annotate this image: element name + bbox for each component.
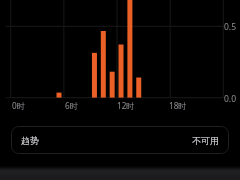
staticText: 0.5 <box>224 21 237 33</box>
staticText: 12时 <box>117 100 135 111</box>
staticText: 不可用 <box>192 135 219 146</box>
button[interactable]: 趋势 <box>11 126 229 154</box>
staticText: 6时 <box>65 100 78 111</box>
staticText: 0时 <box>12 100 25 111</box>
staticText: 0.0 <box>224 93 237 105</box>
staticText: 趋势 <box>21 135 39 146</box>
staticText: 18时 <box>169 100 187 111</box>
